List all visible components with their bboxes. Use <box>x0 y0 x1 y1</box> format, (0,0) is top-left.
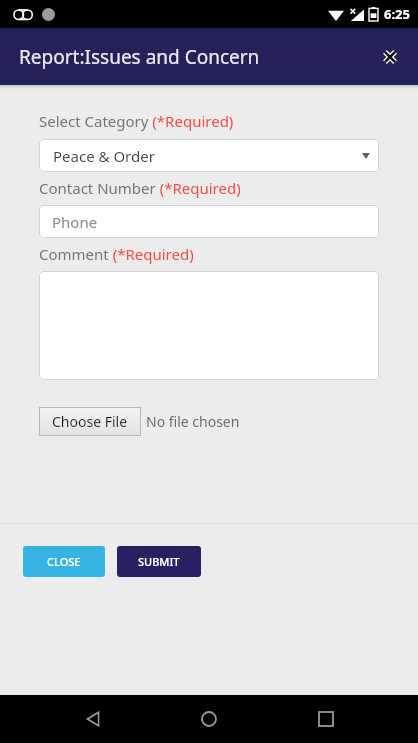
staticText: Comment (*Required) <box>39 244 194 264</box>
staticText: Contact Number (*Required) <box>39 178 241 198</box>
staticText: No file chosen <box>146 412 240 431</box>
staticText: Choose File <box>52 412 128 431</box>
button[interactable]: Back <box>69 695 117 743</box>
button[interactable]: Home <box>185 695 233 743</box>
staticText: Phone <box>52 212 98 232</box>
staticText: 6:25 <box>384 5 410 23</box>
button[interactable]: CLOSE <box>23 546 105 577</box>
staticText: Report:Issues and Concern <box>19 44 260 70</box>
button[interactable] <box>39 271 379 380</box>
button[interactable]: Phone <box>39 205 379 238</box>
button[interactable]: Recent apps <box>302 695 350 743</box>
button[interactable]: Close <box>370 37 410 77</box>
staticText: SUBMIT <box>138 554 180 569</box>
button[interactable]: Peace & Order <box>39 139 379 172</box>
staticText: Peace & Order <box>53 146 155 166</box>
staticText: Select Category (*Required) <box>39 111 234 131</box>
button[interactable]: SUBMIT <box>117 546 201 577</box>
staticText: CLOSE <box>47 554 81 569</box>
button[interactable]: Choose File <box>39 407 141 436</box>
